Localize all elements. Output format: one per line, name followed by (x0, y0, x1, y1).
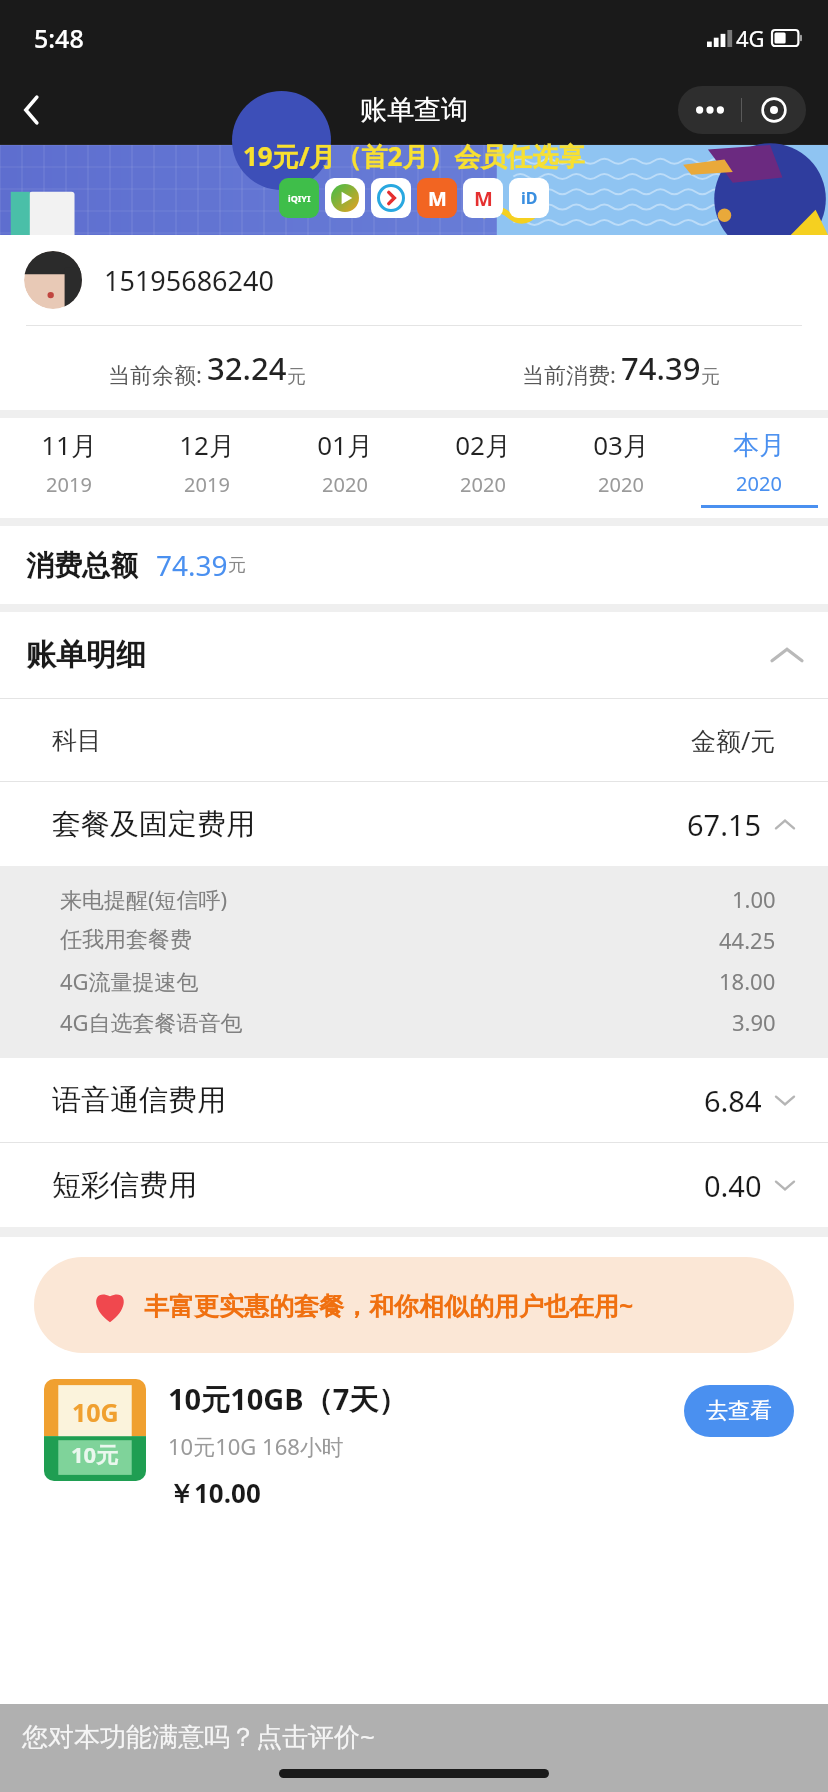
button[interactable]: More options (678, 86, 806, 134)
staticText: iQIYI (288, 192, 311, 204)
staticText: M (474, 185, 493, 212)
staticText: 本月 (733, 429, 785, 462)
staticText: 10元10G 168小时 (168, 1431, 344, 1461)
staticText: 短彩信费用 (52, 1167, 197, 1204)
staticText: 74.39 (621, 347, 701, 389)
button[interactable]: 短彩信费用 (0, 1143, 828, 1227)
staticText: 32.24 (207, 347, 287, 389)
staticText: 2019 (184, 471, 230, 498)
staticText: 4G流量提速包 (60, 966, 199, 996)
button[interactable]: 4G自选套餐语音包 (0, 1001, 828, 1042)
staticText: 账单查询 (360, 93, 468, 127)
button[interactable]: 02月 (414, 418, 552, 518)
staticText: 2020 (598, 471, 644, 498)
button[interactable]: 任我用套餐费 (0, 919, 828, 960)
button[interactable]: 账单明细 (0, 612, 828, 698)
staticText: 套餐及固定费用 (52, 806, 255, 843)
staticText: 0.40 (704, 1166, 762, 1205)
staticText: 6.84 (704, 1081, 762, 1120)
button[interactable]: 您对本功能满意吗？点击评价~ (0, 1704, 828, 1792)
staticText: 2019 (46, 471, 92, 498)
staticText: 10元 (71, 1439, 119, 1469)
staticText: 12月 (179, 427, 235, 463)
staticText: 元 (701, 365, 720, 389)
staticText: 11月 (41, 427, 97, 463)
staticText: 1.00 (732, 884, 776, 914)
staticText: 2020 (322, 471, 368, 498)
button[interactable]: 套餐及固定费用 (0, 782, 828, 866)
staticText: 4G自选套餐语音包 (60, 1007, 243, 1037)
staticText: 15195686240 (104, 262, 274, 299)
button[interactable]: 11月 (0, 418, 138, 518)
staticText: 去查看 (706, 1397, 772, 1425)
button[interactable]: 10G (0, 1379, 828, 1511)
staticText: 18.00 (719, 966, 776, 996)
staticText: 科目 (52, 725, 102, 756)
staticText: 元 (287, 365, 306, 389)
staticText: 19元/月（首2月）会员任选享 (243, 138, 585, 174)
staticText: ￥10.00 (168, 1475, 261, 1511)
staticText: 44.25 (719, 925, 776, 955)
staticText: 67.15 (687, 805, 762, 844)
staticText: iD (521, 187, 538, 209)
staticText: 3.90 (732, 1007, 776, 1037)
staticText: 元 (228, 554, 246, 577)
staticText: 消费总额 (26, 548, 138, 583)
button[interactable]: 15195686240 (0, 235, 828, 325)
staticText: 74.39 (156, 546, 228, 584)
button[interactable]: Promotion banner (0, 145, 828, 235)
button[interactable]: 语音通信费用 (0, 1058, 828, 1142)
staticText: 2020 (460, 471, 506, 498)
button[interactable]: 03月 (552, 418, 690, 518)
button[interactable]: 去查看 (684, 1385, 794, 1437)
button[interactable]: 本月 (690, 418, 828, 518)
button[interactable]: 来电提醒(短信呼) (0, 878, 828, 919)
staticText: 当前余额: (108, 359, 202, 389)
staticText: 10元10GB（7天） (168, 1379, 408, 1419)
staticText: 当前消费: (522, 359, 616, 389)
staticText: 03月 (593, 427, 649, 463)
staticText: 01月 (317, 427, 373, 463)
button[interactable]: 01月 (276, 418, 414, 518)
staticText: 2020 (736, 470, 782, 497)
button[interactable]: 12月 (138, 418, 276, 518)
staticText: 4G (736, 23, 765, 53)
button[interactable]: Back (0, 78, 64, 142)
staticText: 来电提醒(短信呼) (60, 884, 228, 914)
staticText: 任我用套餐费 (60, 926, 192, 954)
staticText: 5:48 (34, 21, 84, 55)
staticText: 10G (72, 1395, 119, 1429)
staticText: 语音通信费用 (52, 1082, 226, 1119)
staticText: 金额/元 (691, 723, 776, 757)
button[interactable]: 丰富更实惠的套餐，和你相似的用户也在用~ (34, 1257, 794, 1353)
button[interactable]: 4G流量提速包 (0, 960, 828, 1001)
staticText: M (428, 185, 447, 212)
staticText: 丰富更实惠的套餐，和你相似的用户也在用~ (144, 1288, 634, 1322)
staticText: 02月 (455, 427, 511, 463)
staticText: 账单明细 (26, 636, 146, 674)
staticText: 您对本功能满意吗？点击评价~ (22, 1718, 375, 1754)
